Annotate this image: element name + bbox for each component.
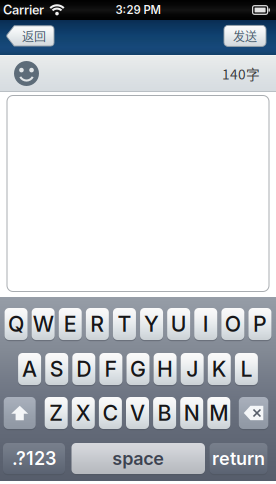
staticText: O xyxy=(225,311,241,337)
button[interactable]: A xyxy=(18,353,41,385)
button[interactable]: Shift xyxy=(4,397,36,429)
staticText: D xyxy=(76,356,91,382)
button[interactable]: Z xyxy=(45,397,68,429)
staticText: Q xyxy=(8,311,24,337)
staticText: Y xyxy=(144,311,159,337)
staticText: A xyxy=(22,356,37,382)
staticText: Z xyxy=(49,400,63,426)
button[interactable]: M xyxy=(207,397,230,429)
button[interactable]: W xyxy=(32,308,55,340)
button[interactable]: U xyxy=(167,308,190,340)
staticText: 3:29 PM xyxy=(115,3,160,17)
staticText: M xyxy=(209,400,228,426)
button[interactable]: D xyxy=(72,353,95,385)
button[interactable]: .?123 xyxy=(3,443,65,474)
button[interactable]: B xyxy=(153,397,176,429)
button[interactable]: Emoji keyboard xyxy=(8,55,45,92)
button[interactable]: return xyxy=(209,443,267,474)
button[interactable]: 发送 xyxy=(224,25,266,46)
staticText: P xyxy=(253,311,267,337)
button[interactable]: V xyxy=(126,397,149,429)
staticText: F xyxy=(104,356,117,382)
button[interactable]: J xyxy=(181,353,204,385)
staticText: return xyxy=(212,448,265,469)
button[interactable]: F xyxy=(99,353,122,385)
staticText: J xyxy=(186,356,198,382)
button[interactable]: X xyxy=(72,397,95,429)
staticText: E xyxy=(64,311,77,337)
button[interactable]: L xyxy=(235,353,258,385)
button[interactable]: T xyxy=(113,308,136,340)
staticText: S xyxy=(50,356,64,382)
button[interactable]: 返回 xyxy=(6,25,54,46)
staticText: 返回 xyxy=(22,27,46,45)
staticText: .?123 xyxy=(12,448,56,469)
staticText: C xyxy=(102,400,118,426)
button[interactable]: Q xyxy=(5,308,28,340)
button[interactable]: N xyxy=(180,397,203,429)
staticText: W xyxy=(33,311,54,337)
button[interactable]: C xyxy=(99,397,122,429)
staticText: space xyxy=(112,448,164,469)
staticText: K xyxy=(212,356,227,382)
button[interactable]: R xyxy=(86,308,109,340)
staticText: Carrier xyxy=(3,2,44,18)
staticText: R xyxy=(90,311,104,337)
staticText: H xyxy=(157,356,173,382)
button[interactable]: H xyxy=(154,353,177,385)
staticText: U xyxy=(171,311,187,337)
staticText: L xyxy=(240,356,252,382)
button[interactable]: space xyxy=(71,443,205,474)
button[interactable]: S xyxy=(45,353,68,385)
staticText: V xyxy=(130,400,145,426)
staticText: I xyxy=(203,311,209,337)
button[interactable]: O xyxy=(221,308,244,340)
button[interactable]: P xyxy=(248,308,271,340)
button[interactable]: Delete xyxy=(239,397,268,429)
staticText: G xyxy=(130,356,146,382)
button[interactable]: E xyxy=(59,308,82,340)
staticText: X xyxy=(76,400,91,426)
button[interactable]: Y xyxy=(140,308,163,340)
staticText: B xyxy=(158,400,172,426)
staticText: T xyxy=(117,311,131,337)
button[interactable]: I xyxy=(194,308,217,340)
staticText: 发送 xyxy=(233,27,257,45)
button[interactable]: G xyxy=(126,353,149,385)
staticText: N xyxy=(184,400,200,426)
button[interactable]: K xyxy=(208,353,231,385)
staticText: 140字 xyxy=(222,64,260,83)
